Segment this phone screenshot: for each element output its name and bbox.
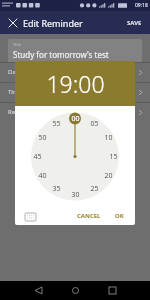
- button[interactable]: Date: [0, 62, 150, 82]
- button[interactable]: Repeat: [0, 102, 150, 122]
- staticText: Study for tomorrow's test: [13, 49, 109, 60]
- staticText: 25: [90, 184, 99, 194]
- staticText: 45: [33, 152, 42, 162]
- staticText: 40: [38, 171, 47, 181]
- button[interactable]: Switch to keyboard input: [24, 211, 37, 222]
- staticText: 15: [109, 152, 118, 162]
- button[interactable]: 40: [34, 171, 50, 181]
- button[interactable]: 20: [100, 171, 116, 181]
- button[interactable]: Back: [32, 284, 45, 297]
- button[interactable]: 55: [48, 119, 64, 129]
- staticText: 50: [38, 133, 47, 143]
- button[interactable]: OK: [112, 208, 127, 224]
- staticText: 30: [71, 190, 80, 200]
- button[interactable]: 35: [48, 184, 64, 194]
- staticText: Title: [13, 42, 21, 47]
- staticText: Edit Reminder: [23, 17, 83, 29]
- button[interactable]: 19:00: [15, 61, 135, 106]
- button[interactable]: Recent apps: [106, 284, 119, 297]
- staticText: 05: [90, 119, 99, 129]
- button[interactable]: 25: [86, 184, 102, 194]
- staticText: 00: [71, 114, 80, 124]
- staticText: 35: [52, 184, 61, 194]
- button[interactable]: 45: [29, 152, 45, 162]
- staticText: Time: [8, 88, 22, 96]
- staticText: Date: [8, 68, 22, 76]
- button[interactable]: Title: [8, 39, 142, 62]
- staticText: 55: [52, 119, 61, 129]
- staticText: 09:18: [135, 2, 148, 9]
- button[interactable]: 15: [105, 152, 121, 162]
- button[interactable]: Time: [0, 82, 150, 102]
- button[interactable]: CANCEL: [74, 208, 104, 224]
- button[interactable]: Close: [5, 15, 20, 30]
- button[interactable]: 30: [67, 190, 83, 200]
- button[interactable]: 00: [67, 114, 83, 124]
- staticText: OK: [115, 212, 124, 220]
- staticText: Repeat: [8, 108, 28, 116]
- button[interactable]: Home: [69, 284, 82, 297]
- staticText: SAVE: [127, 19, 142, 27]
- staticText: 19:00: [46, 68, 105, 99]
- staticText: 20: [104, 171, 113, 181]
- staticText: 10: [104, 133, 113, 143]
- staticText: CANCEL: [77, 212, 101, 220]
- button[interactable]: 50: [34, 133, 50, 143]
- button[interactable]: 10: [100, 133, 116, 143]
- button[interactable]: SAVE: [119, 14, 150, 32]
- button[interactable]: 05: [86, 119, 102, 129]
